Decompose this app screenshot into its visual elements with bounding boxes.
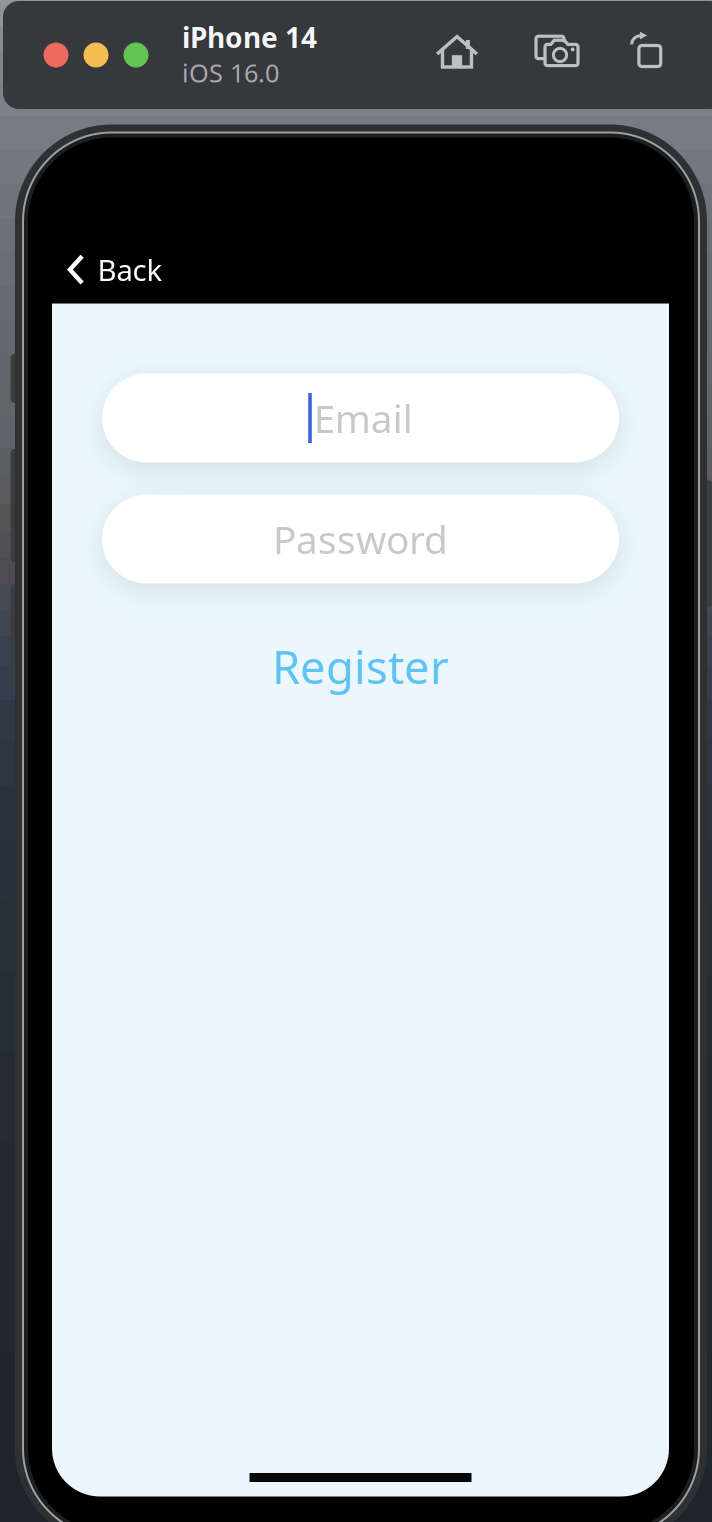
staticText: Email	[314, 392, 413, 444]
staticText: iPhone 14	[182, 19, 317, 56]
staticText: Back	[97, 250, 162, 289]
button[interactable]: Back	[51, 238, 178, 301]
button[interactable]: Home	[422, 27, 491, 77]
button[interactable]: Screenshot	[523, 26, 591, 76]
button[interactable]: Password	[102, 494, 619, 583]
button[interactable]: Minimize window	[77, 36, 114, 73]
button[interactable]: Zoom window	[117, 36, 154, 73]
button[interactable]: Rotate device	[609, 25, 678, 75]
button[interactable]: Close window	[37, 36, 74, 73]
button[interactable]: Email	[102, 373, 619, 462]
staticText: iOS 16.0	[182, 56, 279, 89]
button[interactable]: Register	[210, 631, 510, 701]
staticText: Password	[273, 513, 448, 565]
staticText: Register	[272, 636, 449, 697]
